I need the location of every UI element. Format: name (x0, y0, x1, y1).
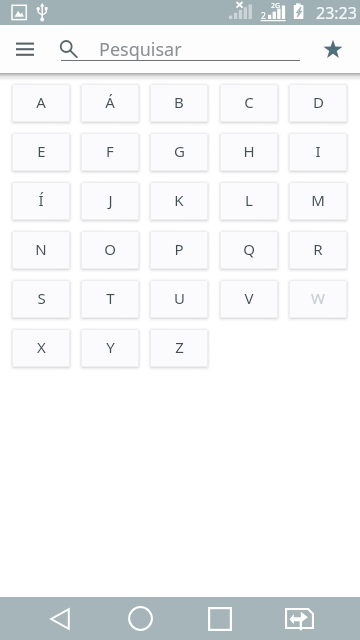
staticText: G (174, 141, 185, 161)
staticText: X (37, 337, 46, 357)
button[interactable]: B (150, 84, 208, 122)
staticText: T (106, 288, 115, 308)
button[interactable]: L (220, 182, 278, 220)
staticText: A (36, 92, 46, 112)
button[interactable]: Menu (6, 30, 44, 68)
button[interactable]: K (150, 182, 208, 220)
button[interactable]: Back (36, 597, 84, 640)
staticText: S (37, 288, 46, 308)
button[interactable]: A (12, 84, 70, 122)
button[interactable]: Á (81, 84, 139, 122)
staticText: N (35, 239, 47, 259)
staticText: F (106, 141, 114, 161)
button[interactable]: Favorites (315, 31, 351, 67)
staticText: J (108, 190, 113, 210)
button[interactable]: Q (220, 231, 278, 269)
staticText: Á (105, 92, 115, 112)
button[interactable]: H (220, 133, 278, 171)
staticText: 23:23 (316, 2, 357, 24)
button[interactable]: Recent apps (196, 597, 244, 640)
button[interactable]: Switch app (275, 597, 323, 640)
button[interactable]: N (12, 231, 70, 269)
button[interactable]: X (12, 329, 70, 367)
button[interactable]: P (150, 231, 208, 269)
staticText: D (313, 92, 324, 112)
button[interactable]: T (81, 280, 139, 318)
staticText: Pesquisar (99, 37, 182, 62)
button[interactable]: Z (150, 329, 208, 367)
staticText: Z (175, 337, 184, 357)
staticText: P (174, 239, 184, 259)
staticText: R (313, 239, 323, 259)
button[interactable]: G (150, 133, 208, 171)
button[interactable]: F (81, 133, 139, 171)
button[interactable]: S (12, 280, 70, 318)
button[interactable]: J (81, 182, 139, 220)
staticText: 2 (261, 10, 266, 22)
staticText: B (174, 92, 184, 112)
button[interactable]: V (220, 280, 278, 318)
staticText: E (37, 141, 46, 161)
staticText: V (244, 288, 254, 308)
button[interactable]: U (150, 280, 208, 318)
button[interactable]: Y (81, 329, 139, 367)
button[interactable]: D (289, 84, 347, 122)
staticText: Í (38, 190, 44, 210)
button[interactable]: I (289, 133, 347, 171)
button[interactable]: Home (116, 597, 164, 640)
button[interactable]: R (289, 231, 347, 269)
staticText: 2G (271, 1, 281, 11)
staticText: U (174, 288, 185, 308)
staticText: I (315, 141, 321, 161)
staticText: Q (243, 239, 255, 259)
staticText: L (245, 190, 253, 210)
staticText: K (174, 190, 184, 210)
staticText: O (104, 239, 116, 259)
button[interactable]: W (289, 280, 347, 318)
button[interactable]: M (289, 182, 347, 220)
staticText: W (311, 288, 325, 308)
button[interactable]: C (220, 84, 278, 122)
button[interactable]: O (81, 231, 139, 269)
button[interactable]: Í (12, 182, 70, 220)
staticText: M (311, 190, 325, 210)
staticText: Y (106, 337, 115, 357)
staticText: C (244, 92, 254, 112)
staticText: H (243, 141, 255, 161)
button[interactable]: E (12, 133, 70, 171)
